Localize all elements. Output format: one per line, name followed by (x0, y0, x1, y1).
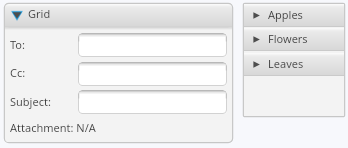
staticText: To: (10, 37, 25, 52)
button[interactable]: Leaves (244, 53, 344, 76)
staticText: Grid (28, 6, 51, 21)
button[interactable]: Apples (244, 4, 344, 27)
staticText: Leaves (268, 56, 304, 71)
staticText: Attachment: N/A (10, 120, 96, 135)
button[interactable]: Flowers (244, 28, 344, 51)
button[interactable]: Subject (78, 90, 227, 114)
staticText: Subject: (10, 94, 51, 109)
button[interactable]: Cc (78, 62, 227, 86)
button[interactable]: Collapse Grid (4, 3, 233, 27)
button[interactable]: To (78, 33, 227, 57)
other: Collapse Grid (12, 11, 26, 23)
staticText: Cc: (10, 65, 26, 80)
staticText: Flowers (268, 31, 308, 46)
staticText: Apples (268, 7, 303, 22)
